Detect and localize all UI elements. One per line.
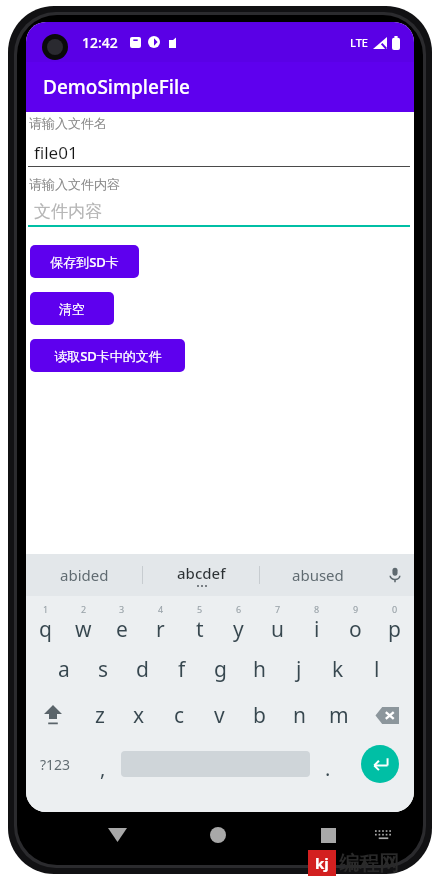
button[interactable]: f	[162, 646, 201, 692]
button[interactable]: Recent apps	[307, 812, 349, 858]
staticText: 保存到SD卡	[50, 253, 119, 271]
staticText: 3	[119, 603, 125, 615]
button[interactable]: 6	[219, 600, 258, 646]
staticText: 6	[236, 603, 242, 615]
button[interactable]: 读取SD卡中的文件	[30, 339, 185, 372]
button[interactable]: abcdef	[143, 554, 259, 596]
button[interactable]: Back	[96, 812, 138, 858]
button[interactable]: 2	[64, 600, 102, 646]
staticText: g	[214, 655, 227, 684]
staticText: u	[271, 615, 284, 644]
button[interactable]: 3	[102, 600, 141, 646]
button[interactable]: Period	[310, 738, 346, 790]
button[interactable]: b	[239, 692, 279, 738]
staticText: q	[39, 615, 52, 644]
staticText: 2	[81, 603, 87, 615]
button[interactable]: abused	[260, 554, 376, 596]
staticText: 0	[392, 603, 398, 615]
staticText: d	[136, 655, 149, 684]
staticText: LTE	[350, 35, 368, 50]
staticText: e	[116, 615, 128, 644]
button[interactable]: Voice input	[376, 554, 414, 596]
button[interactable]: m	[319, 692, 359, 738]
staticText: 编程网	[339, 851, 399, 876]
staticText: 4	[158, 603, 164, 615]
button[interactable]: s	[84, 646, 123, 692]
staticText: 1	[43, 603, 49, 615]
staticText: 5	[197, 603, 203, 615]
button[interactable]: Home	[197, 812, 239, 858]
button[interactable]: 4	[141, 600, 180, 646]
staticText: 12:42	[82, 33, 118, 52]
staticText: 文件内容	[34, 201, 102, 222]
button[interactable]: Backspace	[359, 692, 414, 738]
button[interactable]: Switch keyboard	[362, 812, 404, 858]
staticText: t	[196, 615, 204, 644]
button[interactable]: d	[123, 646, 162, 692]
button[interactable]: n	[279, 692, 319, 738]
button[interactable]: abided	[26, 554, 142, 596]
button[interactable]: 8	[297, 600, 336, 646]
staticText: 8	[314, 603, 320, 615]
staticText: file01	[34, 141, 78, 164]
button[interactable]: 7	[258, 600, 297, 646]
staticText: k	[332, 655, 344, 684]
staticText: r	[156, 615, 165, 644]
staticText: .	[325, 755, 331, 782]
button[interactable]: 1	[26, 600, 64, 646]
staticText: p	[388, 615, 401, 644]
staticText: s	[98, 655, 109, 684]
staticText: DemoSimpleFile	[43, 74, 190, 100]
button[interactable]: v	[199, 692, 239, 738]
staticText: n	[293, 701, 306, 730]
staticText: w	[75, 615, 92, 644]
button[interactable]: h	[240, 646, 279, 692]
staticText: ?123	[40, 755, 71, 774]
staticText: abcdef	[177, 563, 226, 583]
button[interactable]: Shift	[26, 692, 80, 738]
staticText: abused	[292, 565, 344, 585]
button[interactable]: c	[159, 692, 199, 738]
staticText: b	[253, 701, 266, 730]
staticText: z	[95, 701, 105, 730]
staticText: v	[214, 701, 225, 730]
button[interactable]: ?123	[26, 738, 85, 790]
button[interactable]: 清空	[30, 292, 114, 325]
staticText: x	[133, 701, 145, 730]
button[interactable]: a	[44, 646, 84, 692]
staticText: i	[314, 615, 320, 644]
button[interactable]: k	[318, 646, 357, 692]
staticText: 请输入文件名	[29, 115, 107, 131]
staticText: h	[253, 655, 266, 684]
button[interactable]: 5	[180, 600, 219, 646]
staticText: c	[174, 701, 185, 730]
staticText: j	[296, 655, 302, 684]
button[interactable]: l	[357, 646, 396, 692]
button[interactable]: 保存到SD卡	[30, 245, 139, 278]
staticText: 清空	[59, 301, 85, 317]
staticText: abided	[60, 565, 109, 585]
button[interactable]: 0	[375, 600, 414, 646]
staticText: 9	[353, 603, 359, 615]
staticText: kj	[315, 853, 329, 873]
button[interactable]: Enter	[346, 738, 414, 790]
button[interactable]: x	[119, 692, 159, 738]
staticText: 读取SD卡中的文件	[54, 347, 162, 365]
staticText: 请输入文件内容	[29, 176, 120, 192]
button[interactable]: Comma	[85, 738, 121, 790]
button[interactable]: 9	[336, 600, 375, 646]
staticText: a	[58, 655, 70, 684]
staticText: y	[233, 615, 244, 644]
button[interactable]: j	[279, 646, 318, 692]
button[interactable]: z	[80, 692, 119, 738]
staticText: o	[349, 615, 362, 644]
staticText: m	[329, 701, 349, 730]
staticText: f	[178, 655, 186, 684]
button[interactable]: g	[201, 646, 240, 692]
staticText: ,	[100, 755, 106, 782]
staticText: l	[374, 655, 380, 684]
staticText: 7	[275, 603, 281, 615]
